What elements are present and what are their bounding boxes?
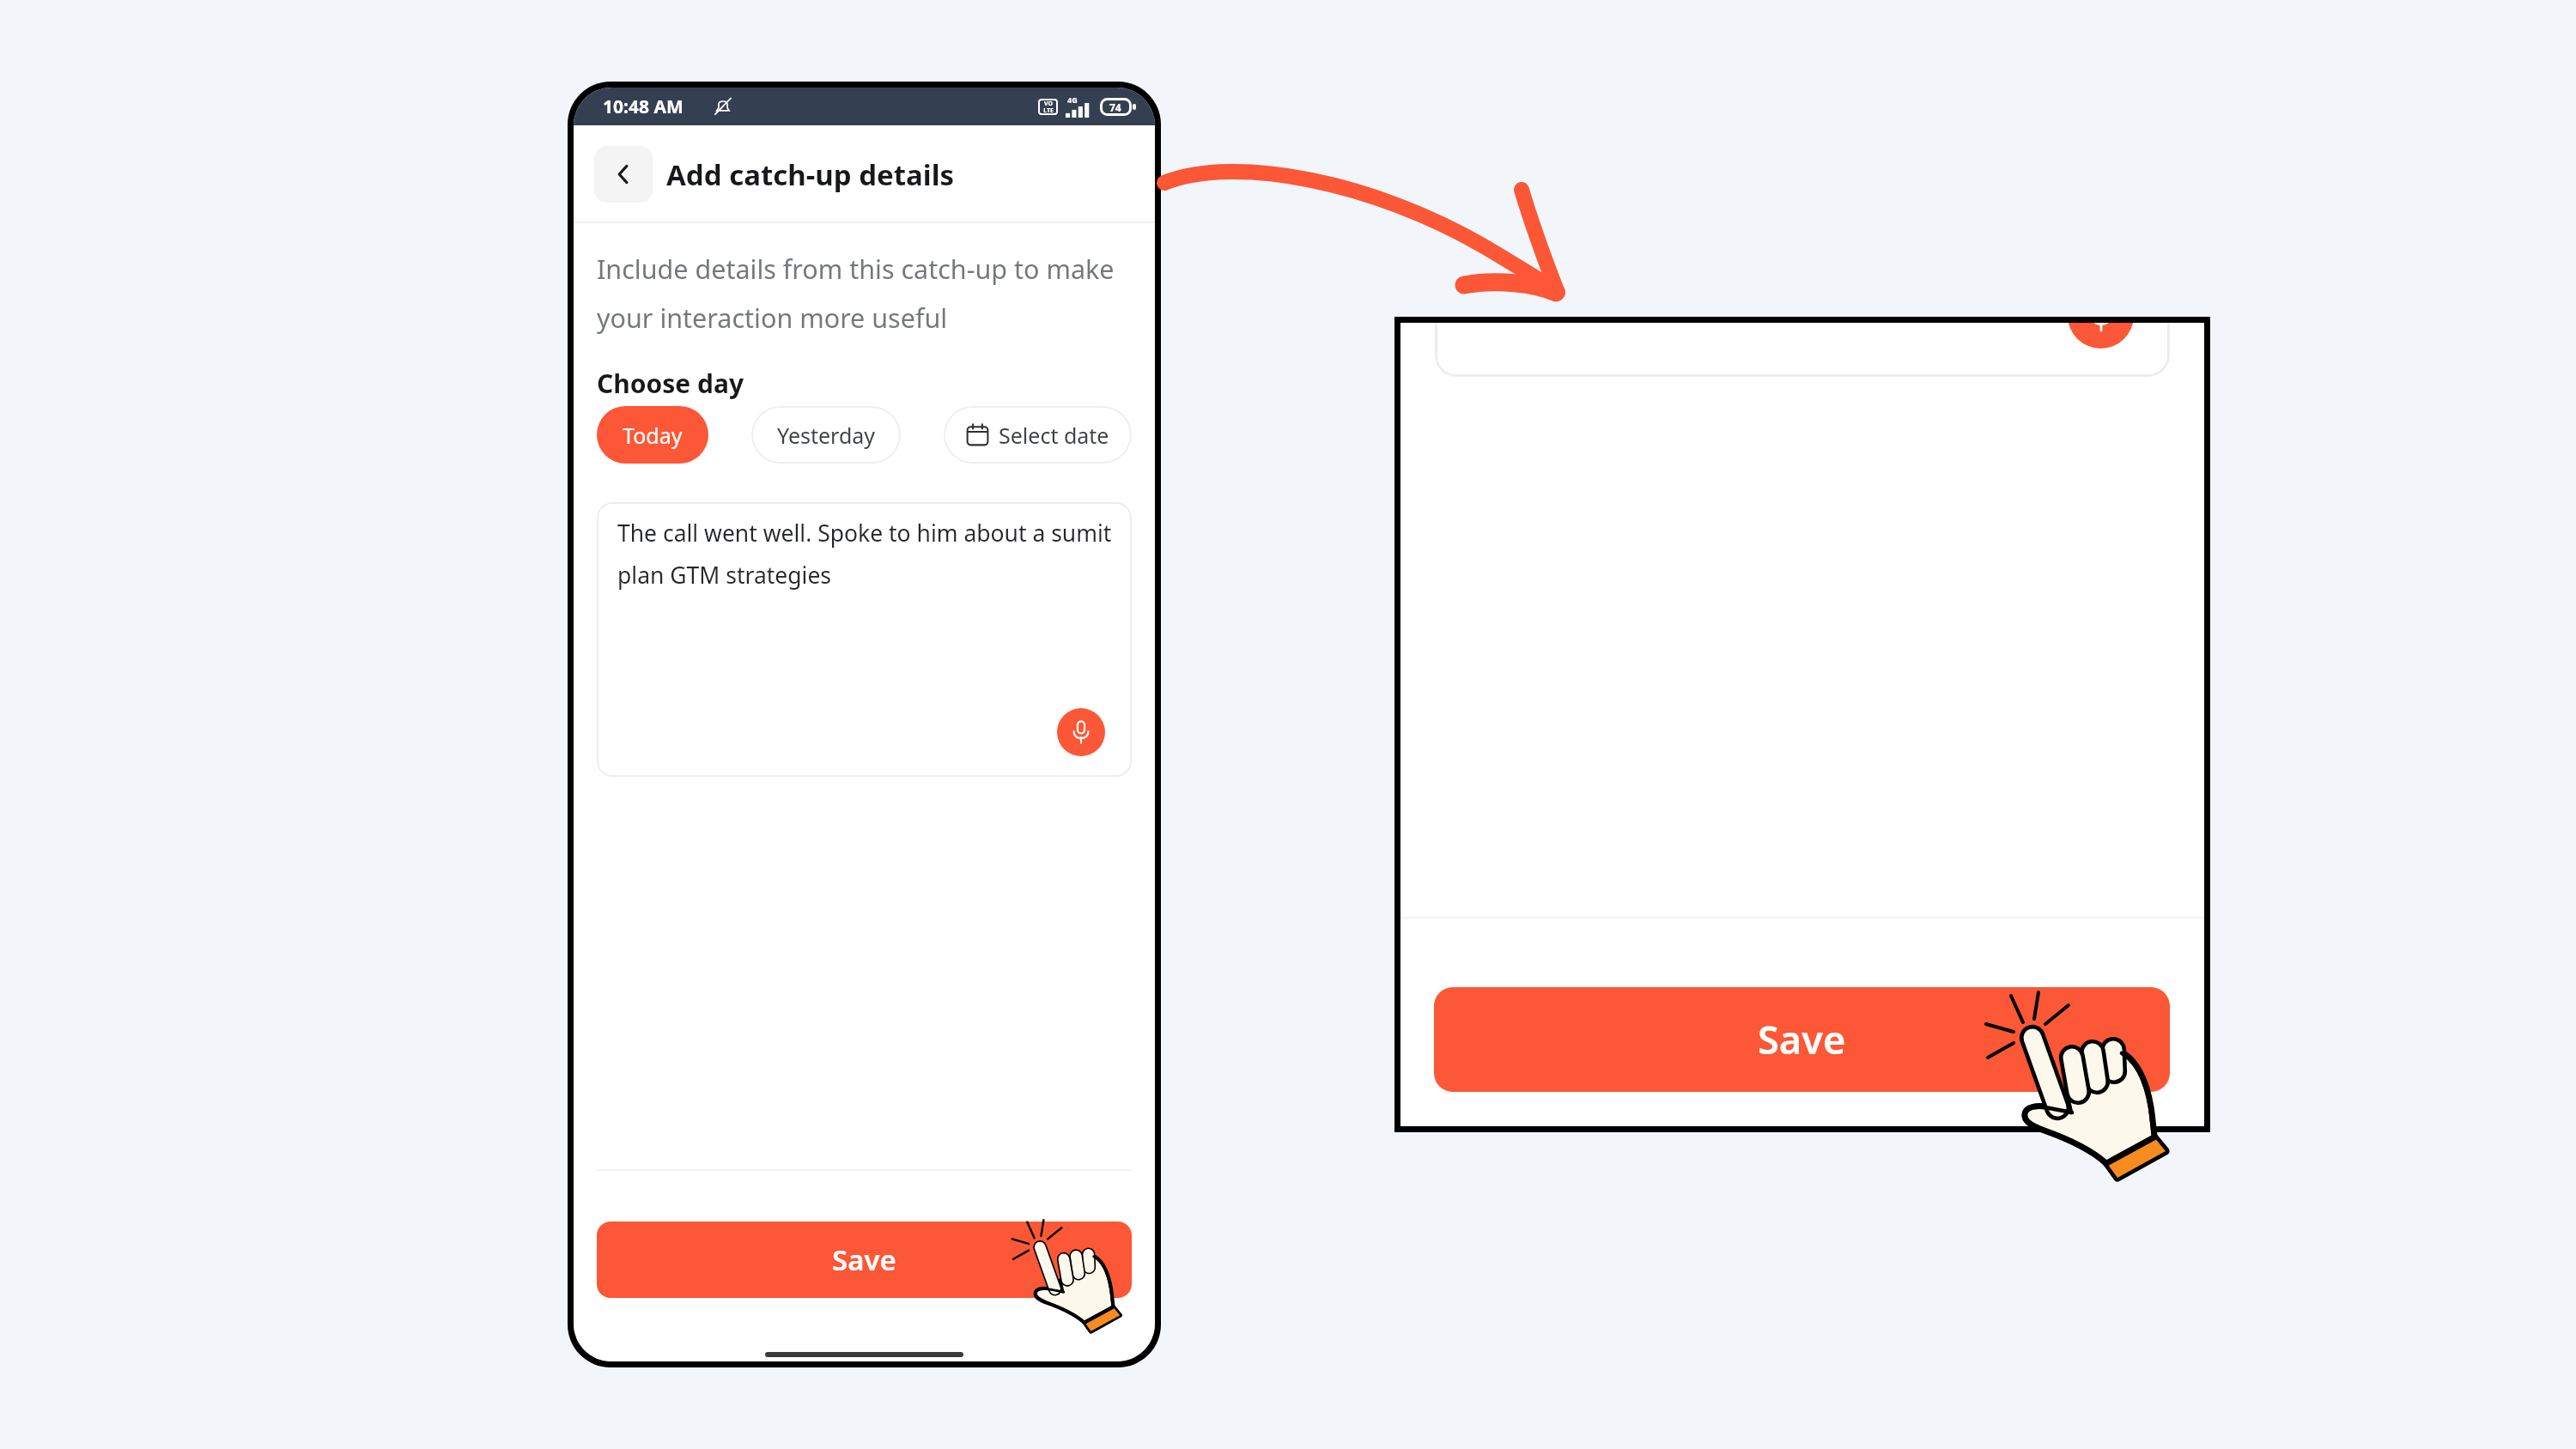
button[interactable]: Yesterday	[751, 406, 901, 464]
staticText: Include details from this catch-up to ma…	[597, 251, 1115, 336]
staticText: Today	[623, 421, 683, 450]
staticText: The call went well. Spoke to him about a…	[617, 518, 1113, 591]
button[interactable]: Save	[1434, 987, 2170, 1092]
button[interactable]: Voice input	[2068, 323, 2134, 349]
button[interactable]: Today	[597, 406, 708, 464]
staticText: Add catch-up details	[666, 155, 955, 194]
staticText: 74	[1109, 100, 1121, 114]
staticText: 10:48 AM	[603, 94, 683, 119]
staticText: 4G	[1067, 94, 1078, 105]
button[interactable]: Back	[594, 146, 653, 203]
staticText: Save	[1758, 1013, 1846, 1066]
staticText: Yesterday	[777, 421, 876, 450]
staticText: Select date	[999, 421, 1109, 450]
button[interactable]: Select date	[944, 406, 1132, 464]
staticText: VO LTE	[1043, 100, 1054, 114]
button[interactable]: Voice input	[1057, 708, 1105, 756]
staticText: Choose day	[597, 366, 744, 401]
button[interactable]: Save	[597, 1222, 1132, 1298]
staticText: Save	[832, 1240, 896, 1279]
